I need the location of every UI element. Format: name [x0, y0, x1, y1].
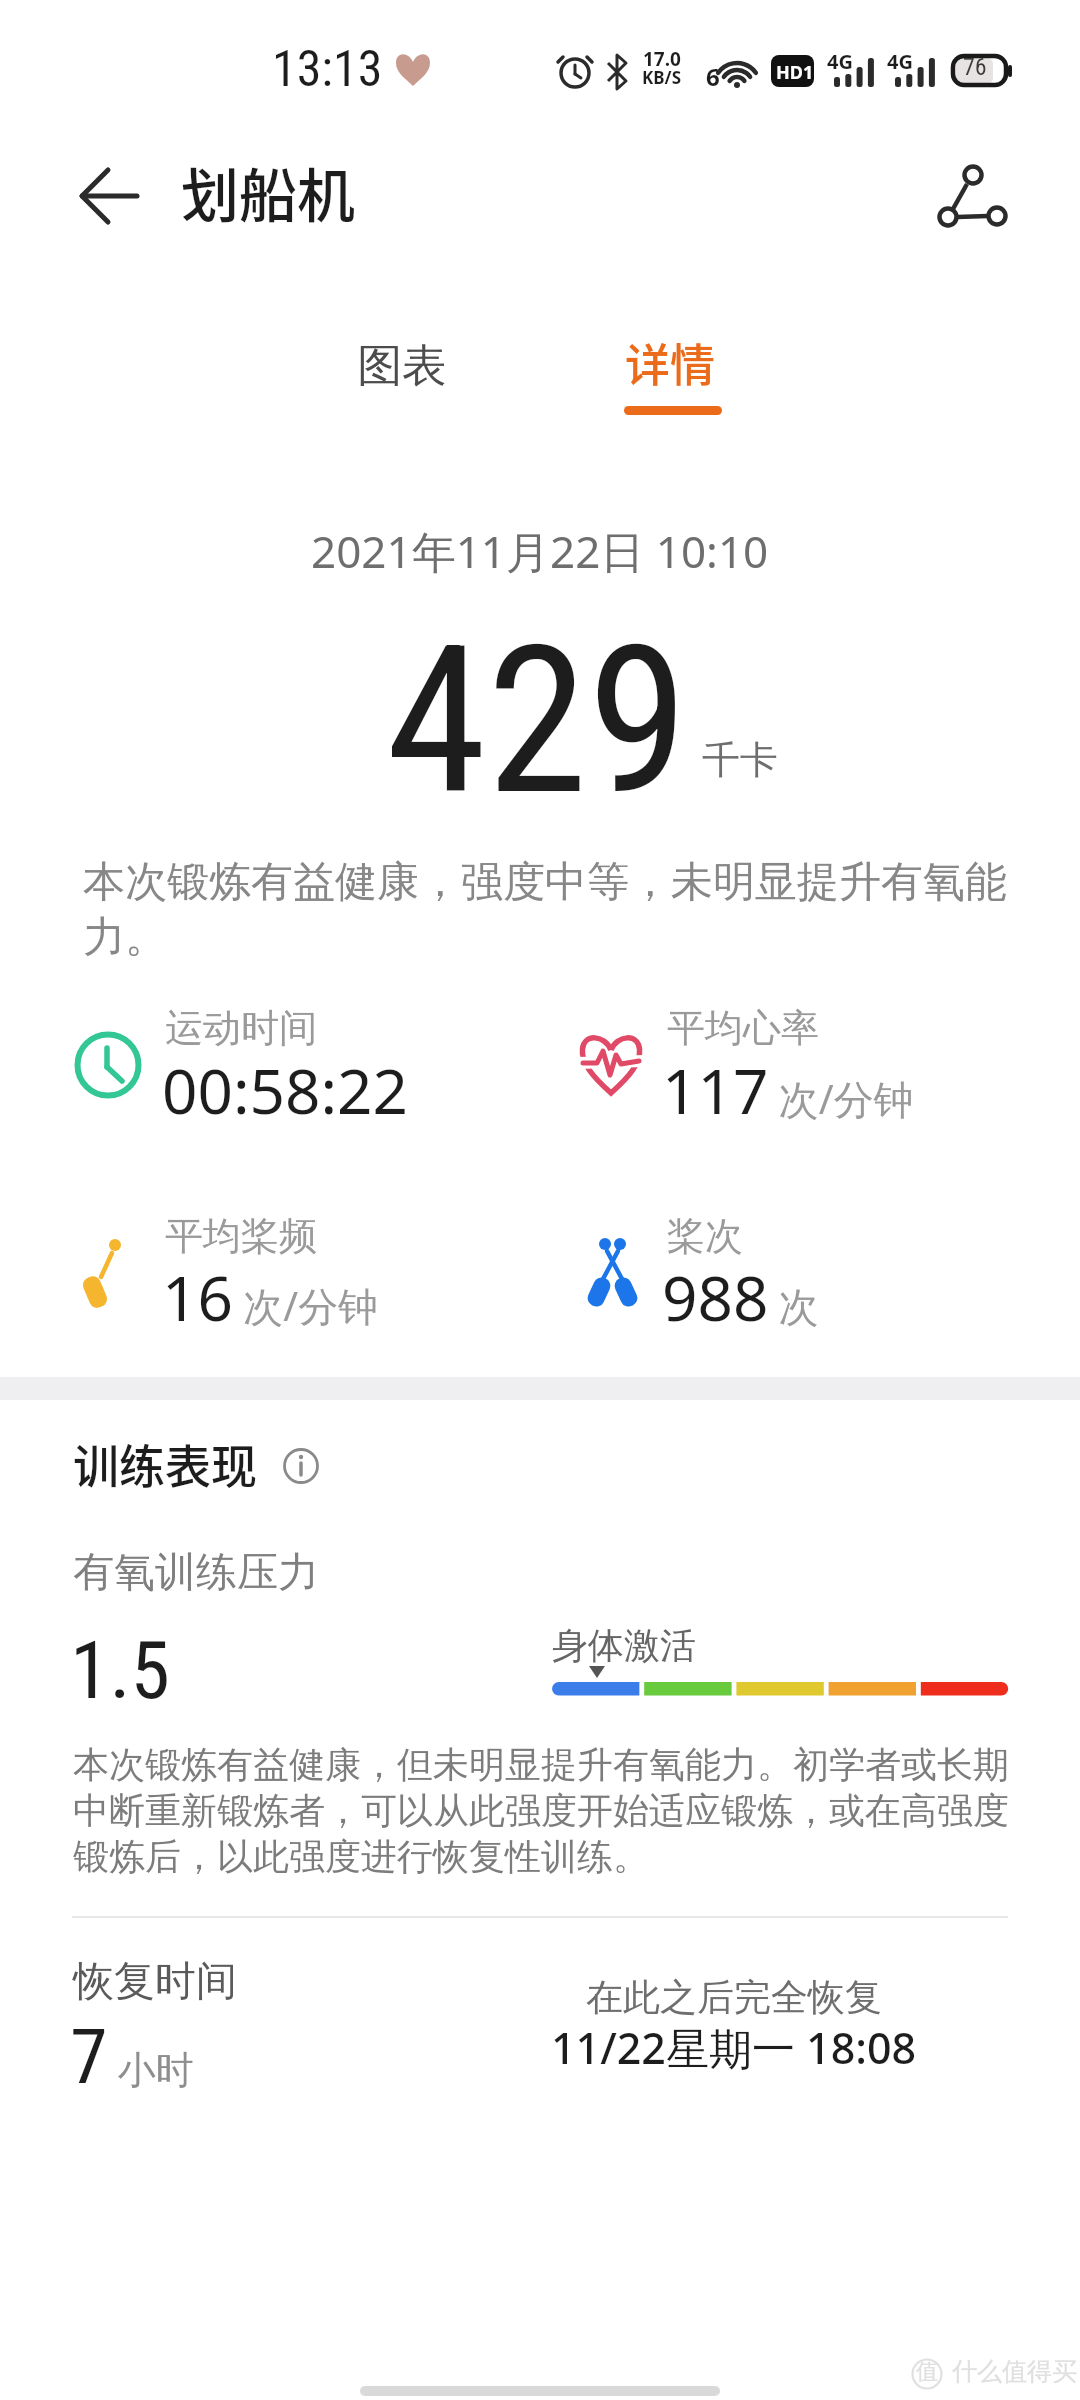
button[interactable]	[50, 150, 160, 245]
staticText: 千卡	[702, 736, 778, 784]
staticText: 图表	[357, 338, 447, 395]
staticText: 4G	[887, 48, 913, 75]
staticText: 6	[706, 60, 720, 93]
staticText: 7 小时	[70, 2012, 194, 2101]
staticText: 11/22星期一 18:08	[551, 2018, 917, 2077]
staticText: 2021年11月22日 10:10	[311, 521, 769, 581]
staticText: KB/S	[642, 66, 682, 89]
button[interactable]: 详情	[600, 320, 755, 420]
staticText: 力。	[83, 911, 167, 964]
staticText: HD1	[776, 60, 814, 85]
staticText: 1.5	[70, 1624, 171, 1718]
staticText: 平均桨频	[165, 1212, 317, 1260]
staticText: 平均心率	[667, 1004, 819, 1052]
staticText: 训练表现	[73, 1430, 257, 1497]
staticText: 中断重新锻炼者，可以从此强度开始适应锻炼，或在高强度	[73, 1788, 1009, 1833]
staticText: 13:13	[272, 40, 383, 99]
staticText: 本次锻炼有益健康，但未明显提升有氧能力。初学者或长期	[73, 1742, 1009, 1787]
staticText: 值	[916, 2358, 938, 2386]
staticText: 运动时间	[165, 1004, 317, 1052]
staticText: 16 次/分钟	[162, 1255, 379, 1339]
staticText: 详情	[625, 330, 716, 395]
staticText: 桨次	[667, 1212, 743, 1260]
staticText: 00:58:22	[162, 1048, 409, 1132]
staticText: 117 次/分钟	[662, 1048, 914, 1132]
staticText: 有氧训练压力	[73, 1547, 319, 1599]
button[interactable]: 图表	[330, 320, 485, 420]
button[interactable]	[920, 150, 1030, 245]
staticText: 76	[963, 53, 987, 81]
staticText: 划船机	[181, 150, 356, 234]
staticText: 4G	[827, 48, 853, 75]
staticText: 恢复时间	[73, 1956, 237, 2008]
staticText: 锻炼后，以此强度进行恢复性训练。	[73, 1834, 649, 1879]
staticText: 在此之后完全恢复	[586, 1974, 882, 2021]
staticText: 本次锻炼有益健康，强度中等，未明显提升有氧能	[83, 856, 1007, 909]
staticText: 17.0	[643, 46, 681, 72]
staticText: 什么值得买	[952, 2356, 1077, 2387]
staticText: 429	[386, 602, 689, 841]
staticText: 身体激活	[552, 1623, 696, 1668]
button[interactable]	[278, 1443, 324, 1489]
staticText: 988 次	[662, 1255, 819, 1339]
